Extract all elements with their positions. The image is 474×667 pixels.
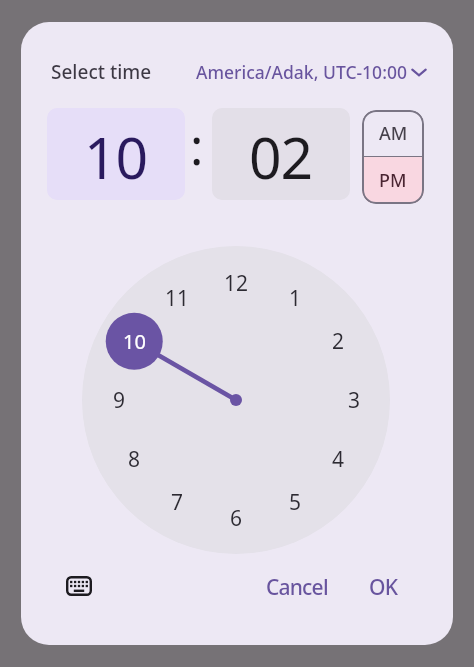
- button[interactable]: 02: [212, 108, 350, 200]
- button[interactable]: 10: [114, 321, 154, 361]
- staticText: 1: [289, 284, 302, 313]
- button[interactable]: America/Adak, UTC-10:00: [21, 58, 453, 86]
- staticText: 6: [230, 504, 243, 533]
- staticText: OK: [369, 573, 398, 602]
- staticText: Select time: [51, 59, 152, 85]
- staticText: 8: [128, 445, 141, 474]
- button[interactable]: OK: [353, 567, 413, 607]
- button[interactable]: PM: [362, 157, 424, 203]
- button[interactable]: 10: [47, 108, 185, 200]
- staticText: 10: [123, 328, 146, 355]
- button[interactable]: 6: [216, 498, 256, 538]
- staticText: 4: [332, 445, 345, 474]
- button[interactable]: 4: [318, 439, 358, 479]
- button[interactable]: 1: [275, 278, 315, 318]
- staticText: 12: [224, 269, 249, 298]
- staticText: 9: [113, 386, 126, 415]
- staticText: 5: [289, 488, 302, 517]
- button[interactable]: Cancel: [252, 567, 342, 607]
- button[interactable]: 3: [334, 380, 374, 420]
- staticText: 11: [165, 284, 190, 313]
- staticText: AM: [379, 121, 408, 146]
- staticText: PM: [379, 168, 407, 193]
- button[interactable]: [59, 566, 99, 606]
- button[interactable]: 2: [318, 321, 358, 361]
- button[interactable]: 5: [275, 482, 315, 522]
- button[interactable]: 8: [114, 439, 154, 479]
- staticText: 02: [249, 118, 313, 196]
- button[interactable]: 11: [157, 278, 197, 318]
- staticText: America/Adak, UTC-10:00: [196, 60, 407, 84]
- staticText: 3: [348, 386, 361, 415]
- button[interactable]: AM: [362, 110, 424, 156]
- staticText: 10: [84, 118, 148, 196]
- staticText: Cancel: [266, 573, 328, 602]
- staticText: 2: [332, 327, 345, 356]
- button[interactable]: 12: [216, 263, 256, 303]
- button[interactable]: 9: [99, 380, 139, 420]
- button[interactable]: 7: [157, 482, 197, 522]
- staticText: :: [190, 112, 204, 180]
- staticText: 7: [171, 488, 184, 517]
